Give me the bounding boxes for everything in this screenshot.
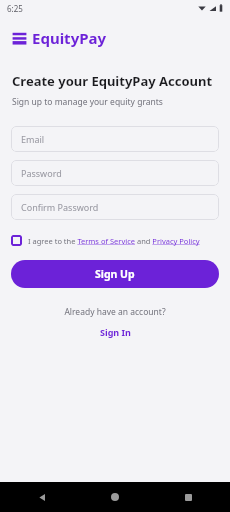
other: Agree to terms checkbox	[11, 235, 22, 246]
button[interactable]: Back	[30, 485, 54, 509]
button[interactable]: Email	[11, 126, 219, 152]
staticText: Email	[21, 133, 45, 145]
other: EquityPay logo	[12, 32, 27, 45]
button[interactable]: Confirm Password	[11, 194, 219, 220]
button[interactable]: Sign Up	[11, 260, 219, 288]
staticText: Confirm Password	[21, 201, 99, 213]
staticText: Sign up to manage your equity grants	[12, 96, 163, 108]
staticText: Password	[21, 167, 62, 179]
button[interactable]: Agree to terms checkbox	[11, 233, 219, 248]
staticText: I agree to the Terms of Service and Priv…	[28, 236, 200, 246]
staticText: 6:25	[7, 3, 23, 14]
staticText: Sign In	[100, 326, 131, 338]
staticText: Create your EquityPay Account	[12, 72, 213, 90]
button[interactable]: Home	[103, 485, 127, 509]
button[interactable]: EquityPay logo	[10, 26, 109, 50]
staticText: EquityPay	[32, 28, 107, 48]
staticText: Already have an account?	[64, 306, 166, 318]
button[interactable]: Sign In	[94, 324, 137, 340]
button[interactable]: Password	[11, 160, 219, 186]
staticText: Sign Up	[95, 267, 135, 281]
button[interactable]: Recent apps	[176, 485, 200, 509]
